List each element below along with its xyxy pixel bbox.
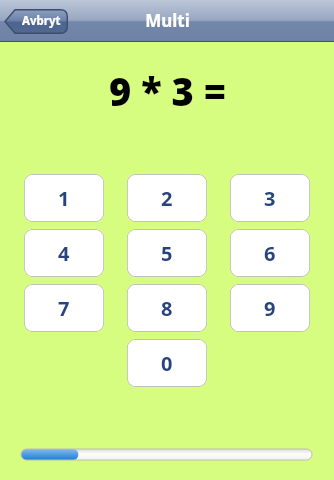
button[interactable]: 1 [24,174,104,222]
staticText: 4 [58,240,70,267]
staticText: 0 [161,350,173,377]
staticText: 2 [161,185,173,212]
button[interactable]: 3 [230,174,310,222]
button[interactable]: 4 [24,229,104,277]
button[interactable]: 2 [127,174,207,222]
button[interactable]: 8 [127,284,207,332]
button[interactable]: 5 [127,229,207,277]
staticText: 9 [264,295,276,322]
button[interactable]: 9 [230,284,310,332]
button[interactable]: 7 [24,284,104,332]
button[interactable]: 6 [230,229,310,277]
staticText: Avbryt [22,13,61,29]
staticText: 3 [264,185,276,212]
button[interactable]: 0 [127,339,207,387]
staticText: 1 [58,185,70,212]
staticText: 6 [264,240,276,267]
staticText: Multi [145,9,190,32]
button[interactable]: Avbryt [4,9,68,34]
staticText: 7 [58,295,70,322]
staticText: 9 * 3 = [109,65,226,117]
staticText: 5 [161,240,173,267]
staticText: 8 [161,295,173,322]
